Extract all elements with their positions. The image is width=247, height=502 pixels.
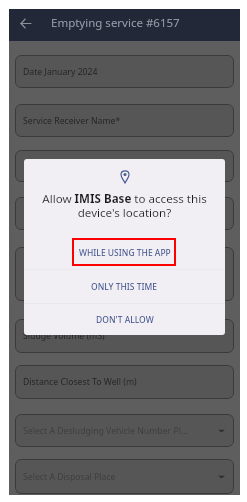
staticText: Select A Disposal Place xyxy=(23,471,116,483)
staticText: Allow IMIS Base to access this device's … xyxy=(40,191,209,220)
button[interactable]: Service Receiver Name* xyxy=(15,104,234,137)
button[interactable]: Back xyxy=(16,13,36,33)
staticText: Date January 2024 xyxy=(23,66,98,78)
button[interactable]: Select A Desludging Vehicle Number Pl... xyxy=(15,414,234,447)
button[interactable] xyxy=(15,247,234,301)
staticText: Select A Desludging Vehicle Number Pl... xyxy=(23,425,188,437)
staticText: Service Receiver Name* xyxy=(23,115,121,127)
staticText: Emptying service #6157 xyxy=(51,15,180,31)
button[interactable]: Date January 2024 xyxy=(15,55,234,88)
button[interactable]: Sludge Volume (m3) xyxy=(15,319,234,353)
button[interactable] xyxy=(15,197,234,230)
staticText: WHILE USING THE APP xyxy=(79,247,171,259)
staticText: ONLY THIS TIME xyxy=(91,281,158,293)
staticText: Sludge Volume (m3) xyxy=(23,330,105,342)
button[interactable]: Distance Closest To Well (m) xyxy=(15,365,234,399)
button[interactable]: WHILE USING THE APP xyxy=(24,236,225,269)
button[interactable] xyxy=(15,150,234,182)
button[interactable]: ONLY THIS TIME xyxy=(24,270,225,303)
button[interactable]: DON'T ALLOW xyxy=(24,304,225,335)
button[interactable]: Select A Disposal Place xyxy=(15,459,234,494)
staticText: DON'T ALLOW xyxy=(96,314,154,326)
staticText: Distance Closest To Well (m) xyxy=(23,376,137,388)
